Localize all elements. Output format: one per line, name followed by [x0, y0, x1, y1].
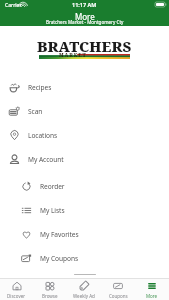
button[interactable]: My Account: [0, 147, 169, 171]
staticText: Carrier: [5, 2, 22, 9]
staticText: Browse: [42, 293, 58, 299]
button[interactable]: Coupons: [101, 279, 135, 300]
staticText: MARKET: [59, 52, 87, 59]
button[interactable]: Scan: [0, 99, 169, 123]
button[interactable]: Discover: [0, 279, 33, 300]
staticText: Scan: [28, 107, 43, 116]
staticText: My Coupons: [40, 254, 79, 263]
button[interactable]: My Lists: [0, 198, 169, 222]
staticText: More: [146, 293, 158, 299]
staticText: Bratchers Market - Montgomery Cty: [46, 19, 124, 25]
staticText: BRATCHERS: [37, 36, 132, 56]
button[interactable]: More: [135, 279, 169, 300]
staticText: 11:17 AM: [72, 1, 97, 8]
button[interactable]: My Coupons: [0, 246, 169, 270]
staticText: Weekly Ad: [73, 293, 95, 299]
staticText: Reorder: [40, 182, 65, 191]
staticText: Discover: [7, 293, 26, 299]
button[interactable]: Locations: [0, 123, 169, 147]
staticText: Locations: [28, 131, 58, 140]
button[interactable]: Reorder: [0, 174, 169, 198]
button[interactable]: Weekly Ad: [67, 279, 101, 300]
staticText: More: [75, 11, 95, 22]
staticText: My Account: [28, 155, 64, 164]
staticText: My Favorites: [40, 230, 79, 239]
staticText: My Lists: [40, 206, 65, 215]
button[interactable]: Recipes: [0, 75, 169, 99]
button[interactable]: Browse: [33, 279, 67, 300]
other: Wifi: [20, 2, 26, 7]
button[interactable]: My Favorites: [0, 222, 169, 246]
staticText: Recipes: [28, 83, 52, 92]
staticText: Coupons: [109, 293, 128, 299]
